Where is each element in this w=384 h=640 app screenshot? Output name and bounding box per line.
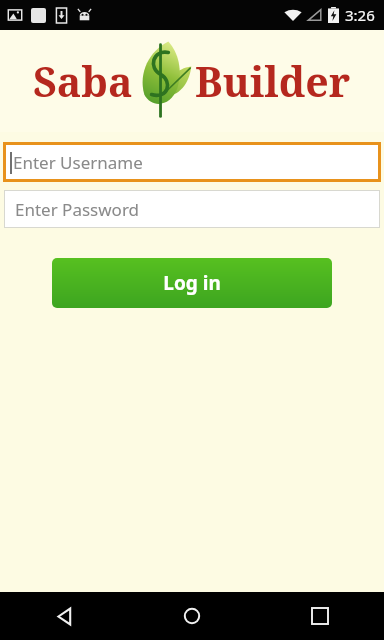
button[interactable]: Enter Password: [4, 190, 380, 228]
staticText: 3:26: [345, 5, 375, 25]
button[interactable]: Recent apps: [256, 592, 384, 640]
button[interactable]: Log in: [52, 258, 332, 308]
staticText: Log in: [163, 270, 221, 296]
staticText: Enter Password: [15, 198, 140, 221]
staticText: Enter Username: [13, 151, 143, 174]
staticText: Builder: [195, 53, 351, 109]
staticText: Saba: [33, 53, 133, 109]
button[interactable]: Back: [0, 592, 128, 640]
button[interactable]: Enter Username: [3, 142, 381, 182]
button[interactable]: Home: [128, 592, 256, 640]
